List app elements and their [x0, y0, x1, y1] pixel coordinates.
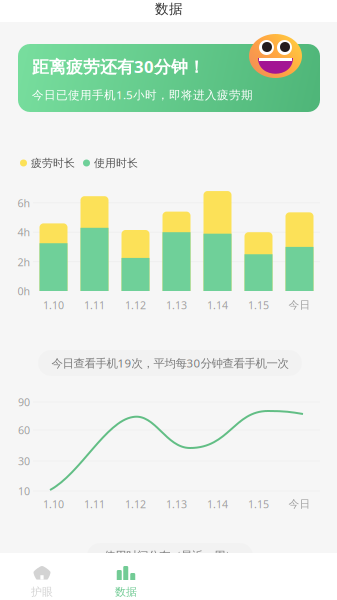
staticText: 今日: [288, 298, 310, 312]
staticText: 1.11: [84, 497, 105, 511]
staticText: 90: [18, 395, 30, 409]
staticText: 1.13: [166, 497, 187, 511]
staticText: 2h: [17, 255, 30, 269]
button[interactable]: 距离疲劳还有30分钟！: [18, 44, 320, 112]
staticText: 4h: [17, 225, 30, 239]
staticText: 今日已使用手机1.5小时，即将进入疲劳期: [32, 87, 253, 103]
staticText: 1.14: [207, 298, 228, 312]
staticText: 数据: [155, 0, 183, 17]
staticText: 使用时长: [94, 156, 138, 170]
staticText: 1.14: [207, 497, 228, 511]
staticText: 今日查看手机19次，平均每30分钟查看手机一次: [51, 355, 288, 371]
staticText: 1.15: [248, 298, 269, 312]
staticText: 1.12: [125, 298, 146, 312]
staticText: 护眼: [31, 585, 53, 599]
staticText: 6h: [17, 196, 30, 210]
staticText: 1.10: [43, 298, 64, 312]
staticText: 1.15: [248, 497, 269, 511]
button[interactable]: 护眼: [0, 553, 84, 600]
staticText: 使用时间分布（最近一周）: [104, 549, 236, 563]
staticText: 1.11: [84, 298, 105, 312]
staticText: 今日: [288, 497, 310, 511]
staticText: 数据: [115, 585, 137, 599]
staticText: 60: [18, 423, 30, 437]
staticText: 1.10: [43, 497, 64, 511]
staticText: 1.13: [166, 298, 187, 312]
button[interactable]: 数据: [84, 553, 168, 600]
staticText: 0h: [17, 284, 30, 298]
staticText: 疲劳时长: [31, 156, 75, 170]
staticText: 1.12: [125, 497, 146, 511]
staticText: 30: [18, 454, 30, 468]
staticText: 10: [18, 484, 30, 498]
staticText: 距离疲劳还有30分钟！: [32, 55, 205, 78]
